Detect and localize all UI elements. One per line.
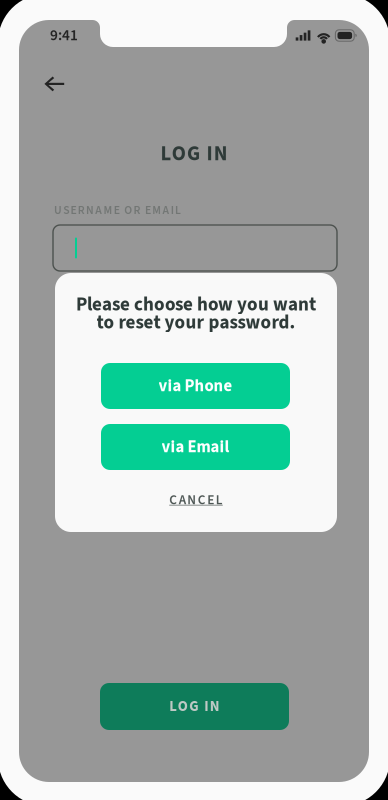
button[interactable]: via Email — [101, 424, 290, 470]
button[interactable]: LOG IN — [100, 683, 289, 730]
staticText: LOG IN — [160, 139, 228, 168]
staticText: USERNAME OR EMAIL — [54, 202, 181, 219]
button[interactable]: CANCEL — [136, 487, 256, 513]
staticText: Please choose how you want — [76, 291, 316, 318]
button[interactable]: Back — [44, 64, 92, 104]
staticText: via Phone — [158, 374, 232, 398]
staticText: via Email — [161, 435, 229, 459]
staticText: 9:41 — [50, 25, 78, 46]
button[interactable]: via Phone — [101, 363, 290, 409]
staticText: CANCEL — [169, 490, 223, 509]
staticText: LOG IN — [169, 696, 220, 717]
staticText: to reset your password. — [96, 309, 295, 336]
